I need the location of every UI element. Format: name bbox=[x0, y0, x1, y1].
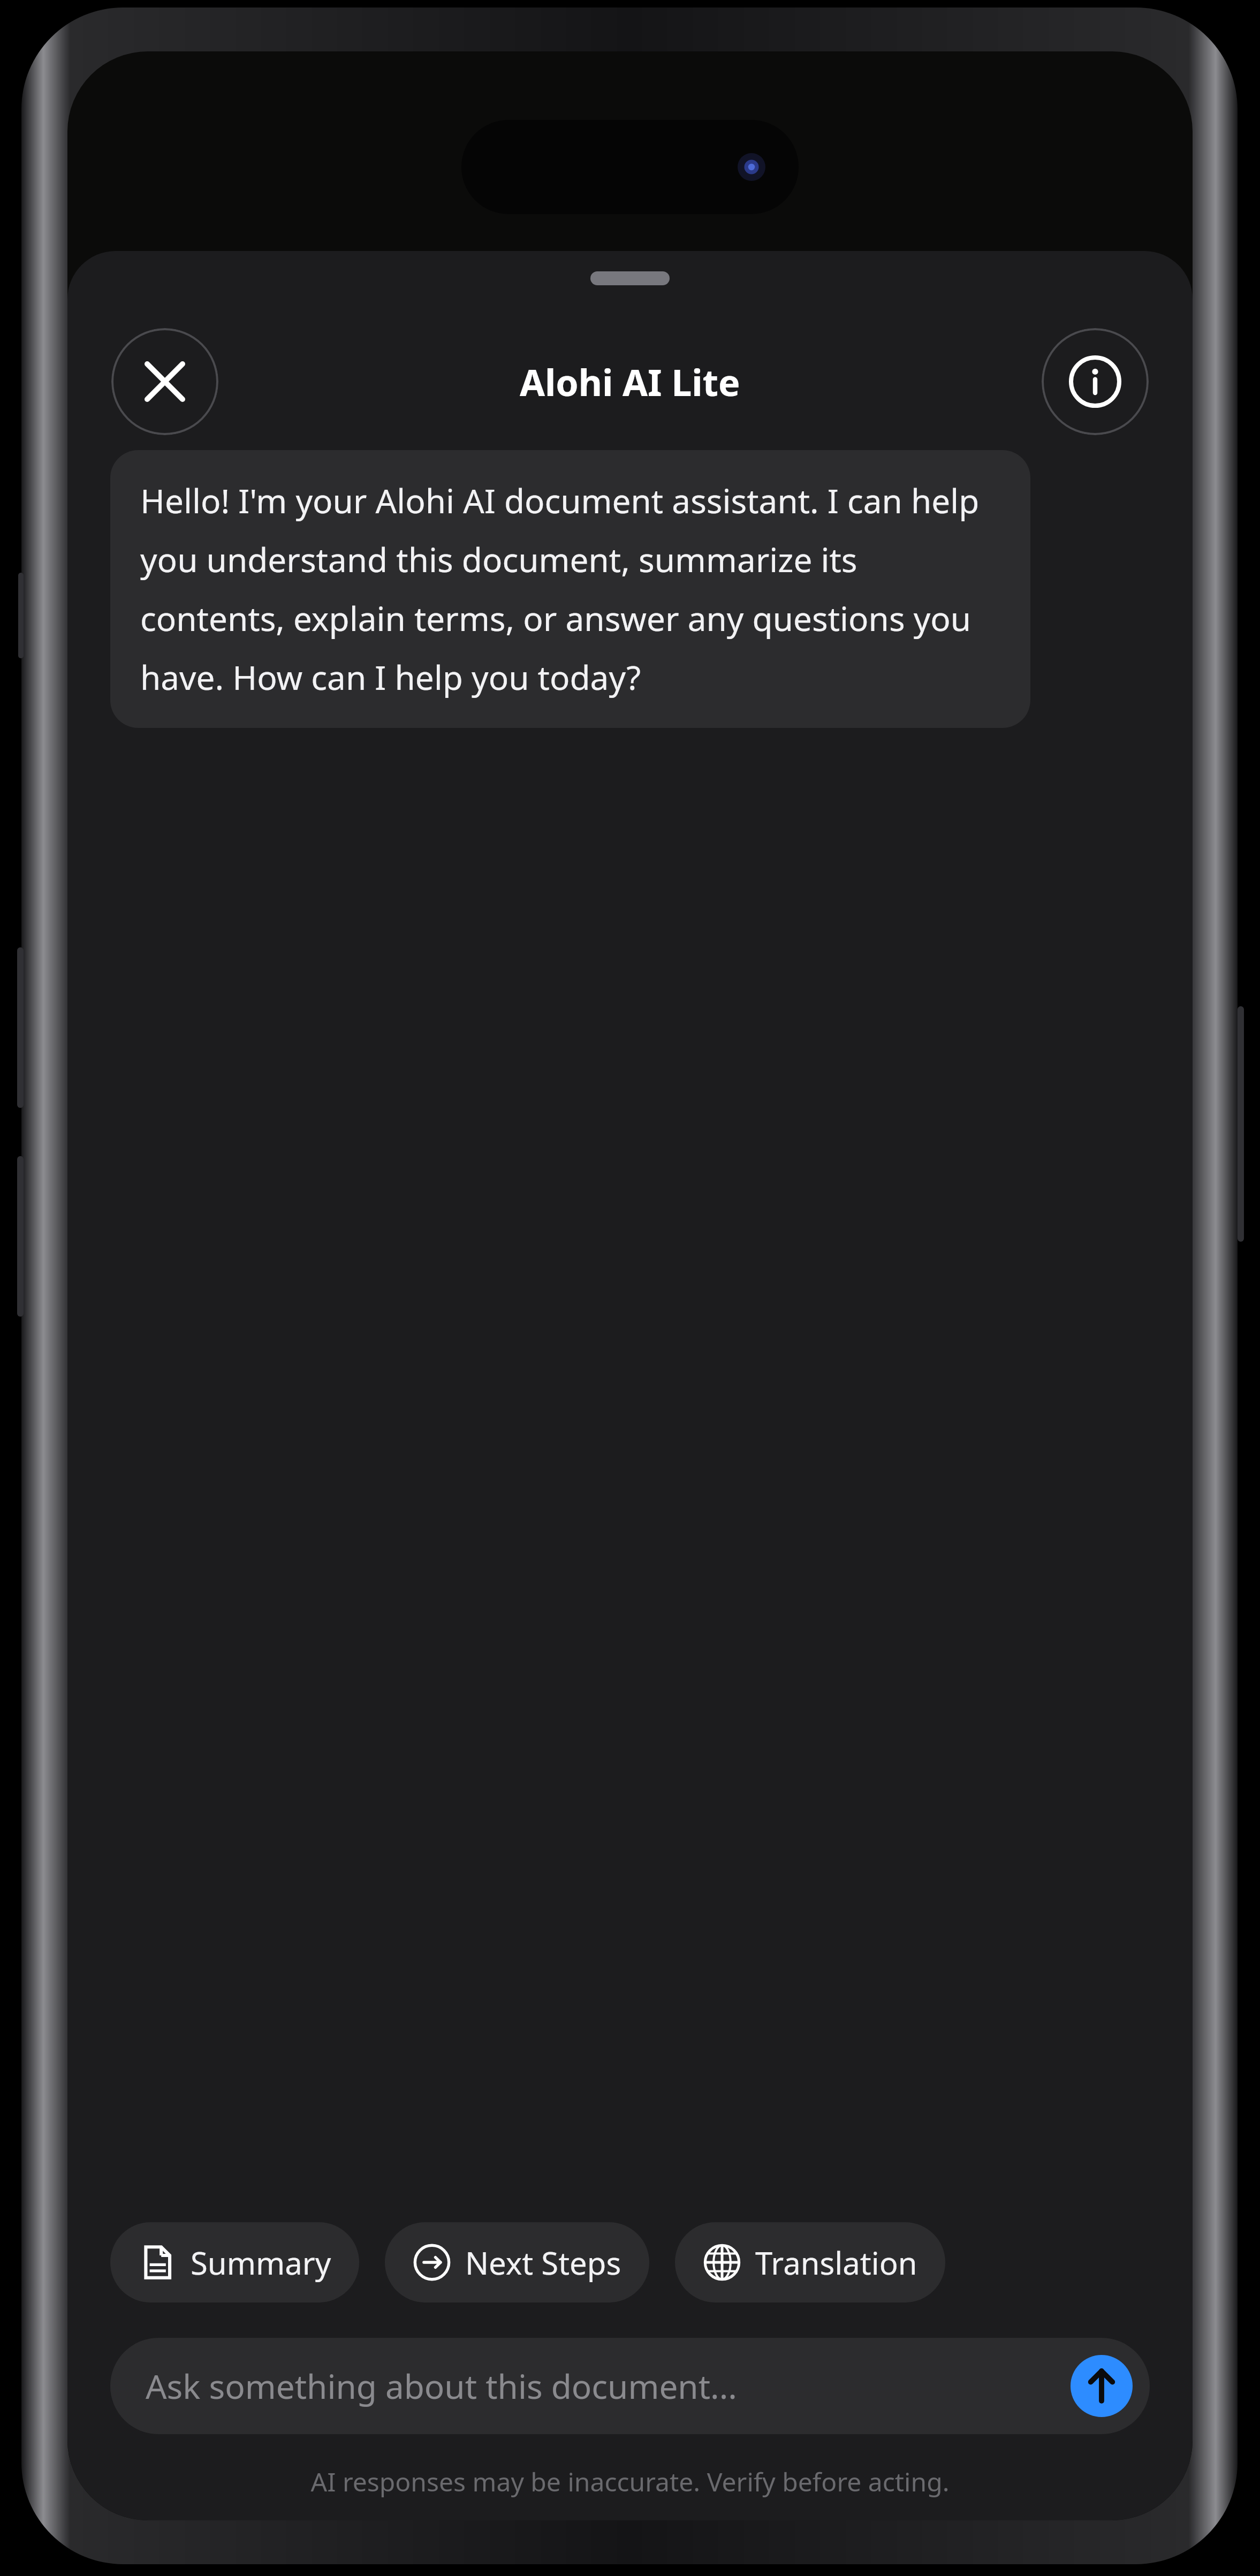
button[interactable]: Summary bbox=[110, 2222, 359, 2303]
button[interactable]: Information bbox=[1042, 328, 1149, 435]
staticText: AI responses may be inaccurate. Verify b… bbox=[100, 2464, 1160, 2499]
button[interactable]: Translation bbox=[675, 2222, 945, 2303]
button[interactable]: Send bbox=[1071, 2355, 1133, 2417]
staticText: Ask something about this document... bbox=[146, 2364, 737, 2408]
staticText: Summary bbox=[191, 2241, 331, 2284]
staticText: Translation bbox=[755, 2241, 917, 2284]
staticText: Next Steps bbox=[465, 2241, 621, 2284]
staticText: Alohi AI Lite bbox=[520, 357, 740, 407]
button[interactable]: Close bbox=[111, 328, 218, 435]
button[interactable]: Next Steps bbox=[385, 2222, 649, 2303]
staticText: Hello! I'm your Alohi AI document assist… bbox=[140, 478, 1000, 700]
button[interactable]: Hello! I'm your Alohi AI document assist… bbox=[110, 450, 1030, 728]
button[interactable]: Ask something about this document... bbox=[110, 2338, 1150, 2434]
